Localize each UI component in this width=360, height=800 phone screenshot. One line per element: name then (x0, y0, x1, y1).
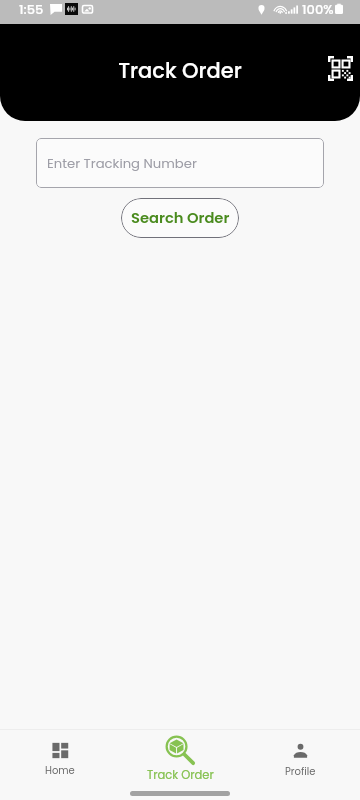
staticText: Enter Tracking Number (47, 154, 197, 172)
button[interactable]: Track Order (120, 730, 240, 787)
staticText: 100% (302, 0, 334, 18)
button[interactable]: Enter Tracking Number (36, 138, 324, 188)
staticText: Search Order (131, 208, 230, 229)
staticText: Track Order (147, 767, 214, 783)
staticText: Profile (285, 764, 316, 778)
button[interactable]: Scan QR code (321, 49, 359, 87)
staticText: Track Order (118, 56, 242, 85)
button[interactable]: Home (0, 730, 120, 787)
button[interactable]: Profile (240, 730, 360, 787)
staticText: Home (45, 763, 75, 777)
staticText: 1:55 (19, 0, 44, 18)
button[interactable]: Search Order (121, 198, 239, 238)
